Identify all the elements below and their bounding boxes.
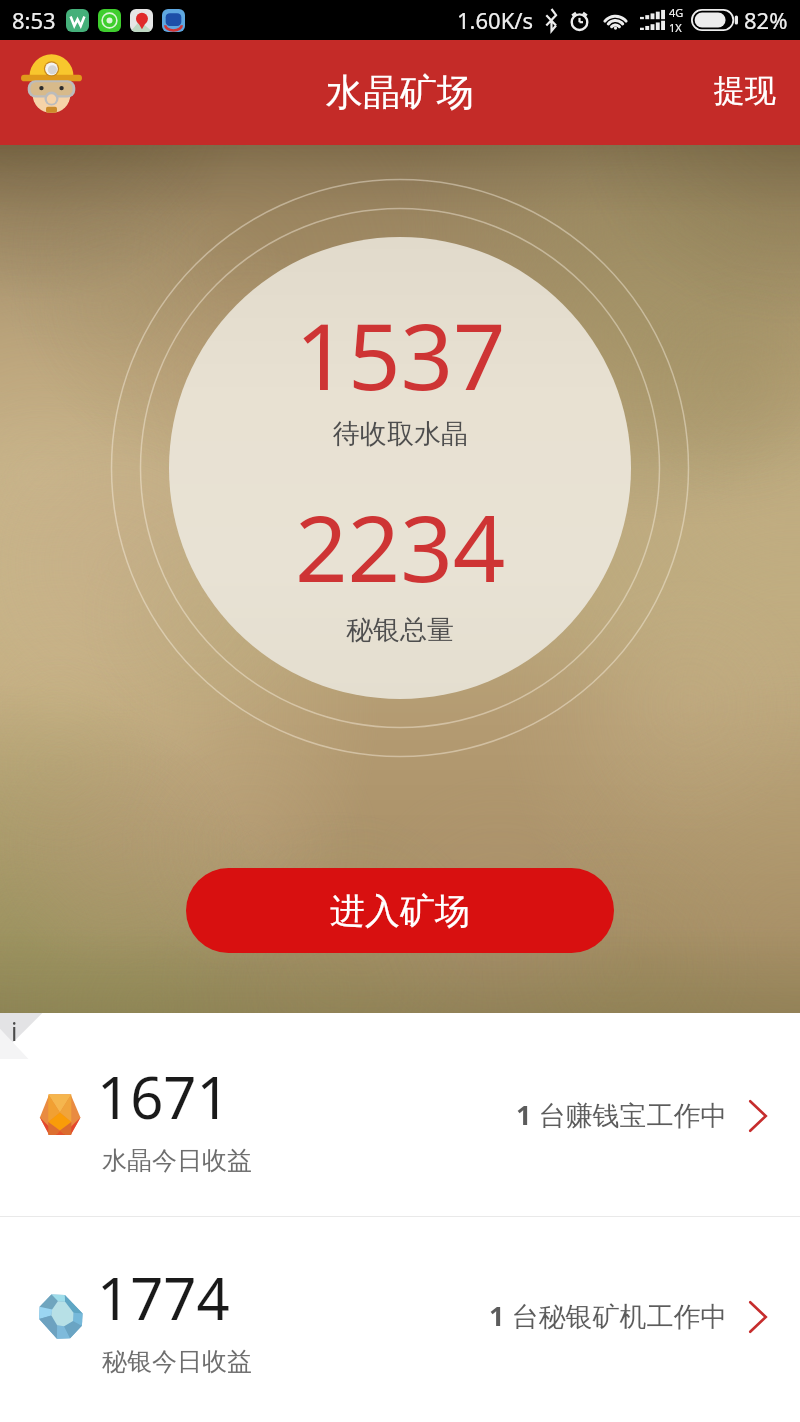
staticText: 1 台赚钱宝工作中 — [516, 1096, 728, 1133]
staticText: 82% — [744, 5, 788, 35]
staticText: 待收取水晶 — [333, 417, 468, 451]
staticText: 秘银今日收益 — [102, 1346, 252, 1377]
staticText: 1671 — [97, 1057, 230, 1136]
button[interactable]: 进入矿场 — [186, 868, 614, 953]
button[interactable]: 1671 — [0, 1077, 800, 1216]
button[interactable]: 提现 — [690, 55, 800, 126]
staticText: 4G — [669, 5, 684, 20]
button[interactable]: Info — [0, 1013, 46, 1059]
staticText: 1537 — [295, 292, 506, 417]
staticText: 1774 — [97, 1258, 230, 1337]
staticText: 进入矿场 — [330, 889, 470, 933]
staticText: 水晶矿场 — [326, 69, 474, 116]
staticText: 1X — [669, 20, 682, 35]
button[interactable]: Profile — [21, 53, 82, 114]
staticText: 8:53 — [12, 5, 56, 35]
staticText: 秘银总量 — [346, 613, 454, 647]
staticText: 1 台秘银矿机工作中 — [489, 1297, 728, 1334]
staticText: 2234 — [295, 484, 506, 609]
staticText: 水晶今日收益 — [102, 1145, 252, 1176]
button[interactable]: 1774 — [0, 1278, 800, 1417]
staticText: 提现 — [714, 71, 776, 110]
staticText: 1.60K/s — [457, 5, 533, 35]
staticText: i — [11, 1014, 18, 1048]
